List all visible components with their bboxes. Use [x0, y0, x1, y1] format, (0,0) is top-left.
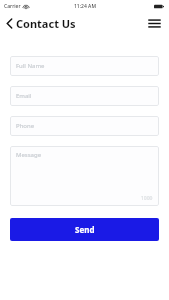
staticText: Send: [75, 224, 95, 235]
staticText: Message: [16, 151, 42, 159]
staticText: Contact Us: [16, 16, 76, 31]
staticText: 1000: [141, 195, 153, 202]
staticText: Full Name: [16, 62, 45, 70]
button[interactable]: Full Name: [10, 56, 159, 76]
staticText: 11:24 AM: [74, 3, 96, 10]
staticText: Phone: [16, 122, 35, 130]
button[interactable]: Phone: [10, 116, 159, 136]
button[interactable]: Message: [10, 146, 159, 206]
button[interactable]: Back: [3, 15, 16, 32]
button[interactable]: Menu: [146, 16, 163, 31]
button[interactable]: Send: [10, 218, 159, 241]
staticText: Carrier: [4, 3, 21, 10]
button[interactable]: Email: [10, 86, 159, 106]
staticText: Email: [16, 92, 32, 100]
